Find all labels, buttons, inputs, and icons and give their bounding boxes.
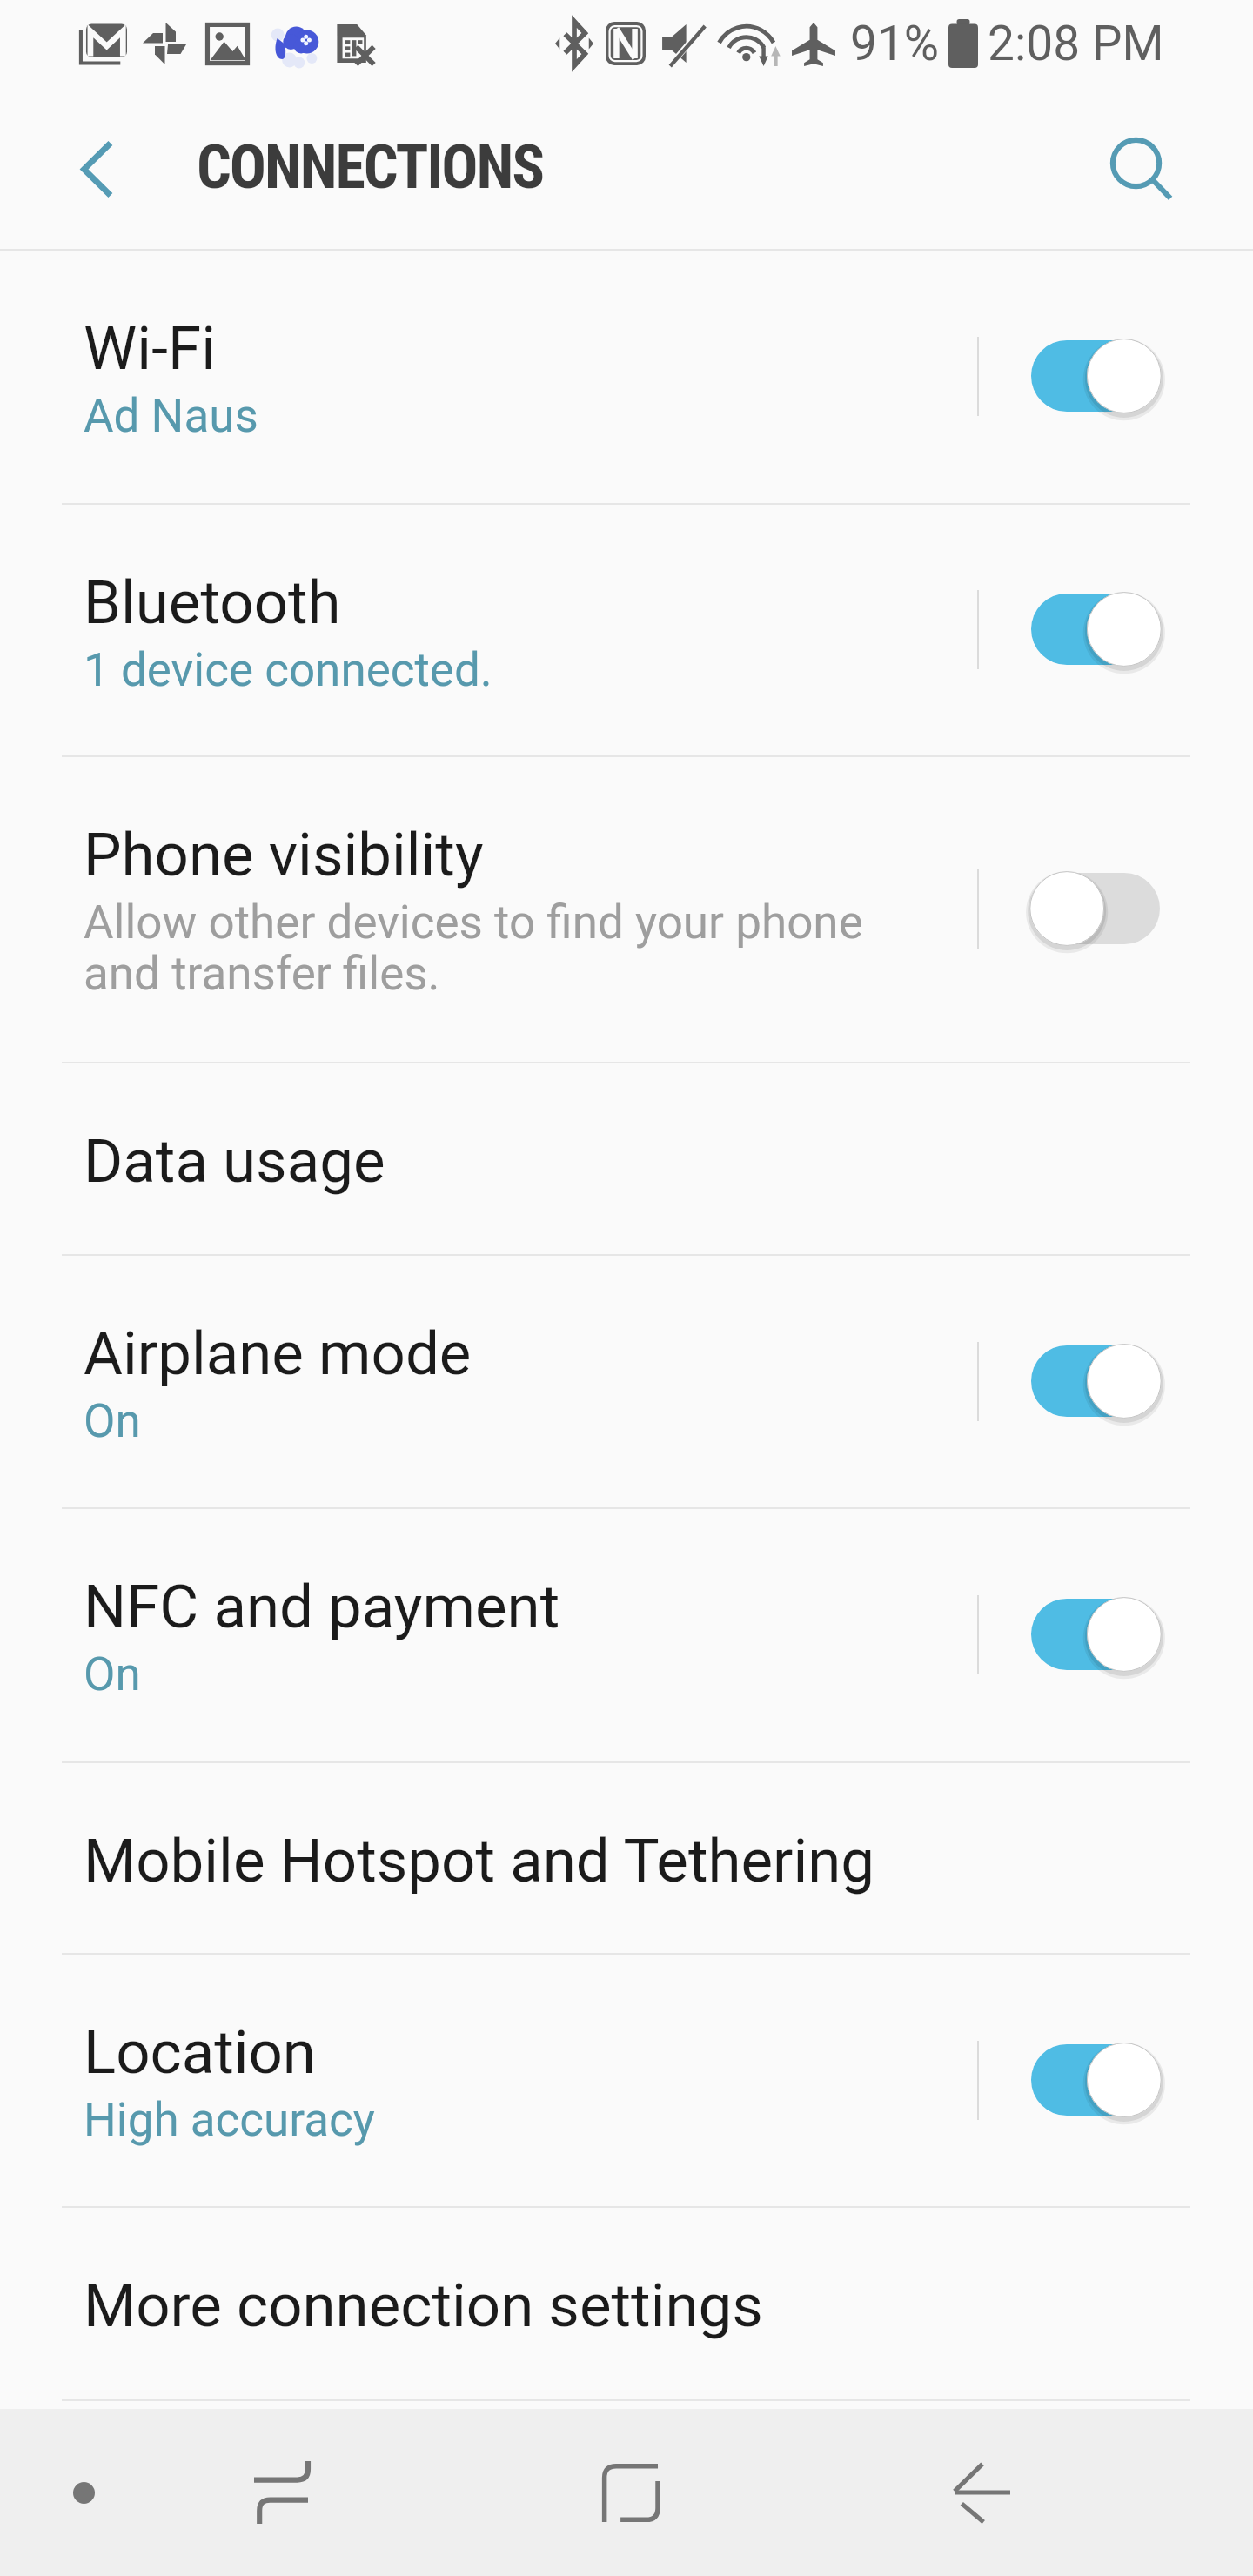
staticText: On — [84, 1394, 141, 1448]
button[interactable]: NFC and payment — [0, 1509, 1253, 1763]
button[interactable]: Turn off — [1031, 1591, 1160, 1678]
staticText: Location — [84, 2017, 316, 2088]
staticText: CONNECTIONS — [197, 131, 543, 203]
button[interactable]: Mobile Hotspot and Tethering — [0, 1763, 1253, 1955]
button[interactable]: Phone visibility — [0, 757, 1253, 1063]
button[interactable]: Recent apps — [185, 2409, 377, 2576]
staticText: Mobile Hotspot and Tethering — [84, 1826, 875, 1896]
button[interactable]: Turn on — [1031, 865, 1160, 952]
staticText: On — [84, 1647, 141, 1701]
button[interactable]: Home — [535, 2409, 727, 2576]
staticText: NFC and payment — [84, 1572, 560, 1642]
staticText: Bluetooth — [84, 567, 341, 638]
staticText: High accuracy — [84, 2093, 375, 2147]
button[interactable]: Data usage — [0, 1063, 1253, 1256]
button[interactable]: Back — [887, 2409, 1078, 2576]
button[interactable]: Turn off — [1031, 1338, 1160, 1425]
button[interactable]: Search — [1093, 120, 1190, 218]
staticText: Data usage — [84, 1126, 385, 1197]
staticText: 91% — [850, 16, 940, 71]
button[interactable]: Airplane mode — [0, 1256, 1253, 1509]
staticText: 1 device connected. — [84, 643, 492, 697]
staticText: Airplane mode — [84, 1318, 472, 1389]
button[interactable]: Location — [0, 1955, 1253, 2208]
button[interactable]: Bluetooth — [0, 505, 1253, 757]
button[interactable]: Navigate up — [49, 122, 143, 216]
staticText: Wi-Fi — [84, 313, 216, 384]
button[interactable]: Wi-Fi — [0, 251, 1253, 505]
button[interactable]: Turn off — [1031, 2036, 1160, 2123]
staticText: More connection settings — [84, 2271, 763, 2341]
staticText: Allow other devices to find your phone a… — [84, 896, 863, 1001]
button[interactable]: Turn off — [1031, 332, 1160, 419]
staticText: 2:08 PM — [988, 16, 1164, 71]
button[interactable]: More connection settings — [0, 2208, 1253, 2401]
staticText: Ad Naus — [84, 389, 258, 443]
staticText: Phone visibility — [84, 820, 484, 890]
button[interactable]: Turn off — [1031, 586, 1160, 673]
